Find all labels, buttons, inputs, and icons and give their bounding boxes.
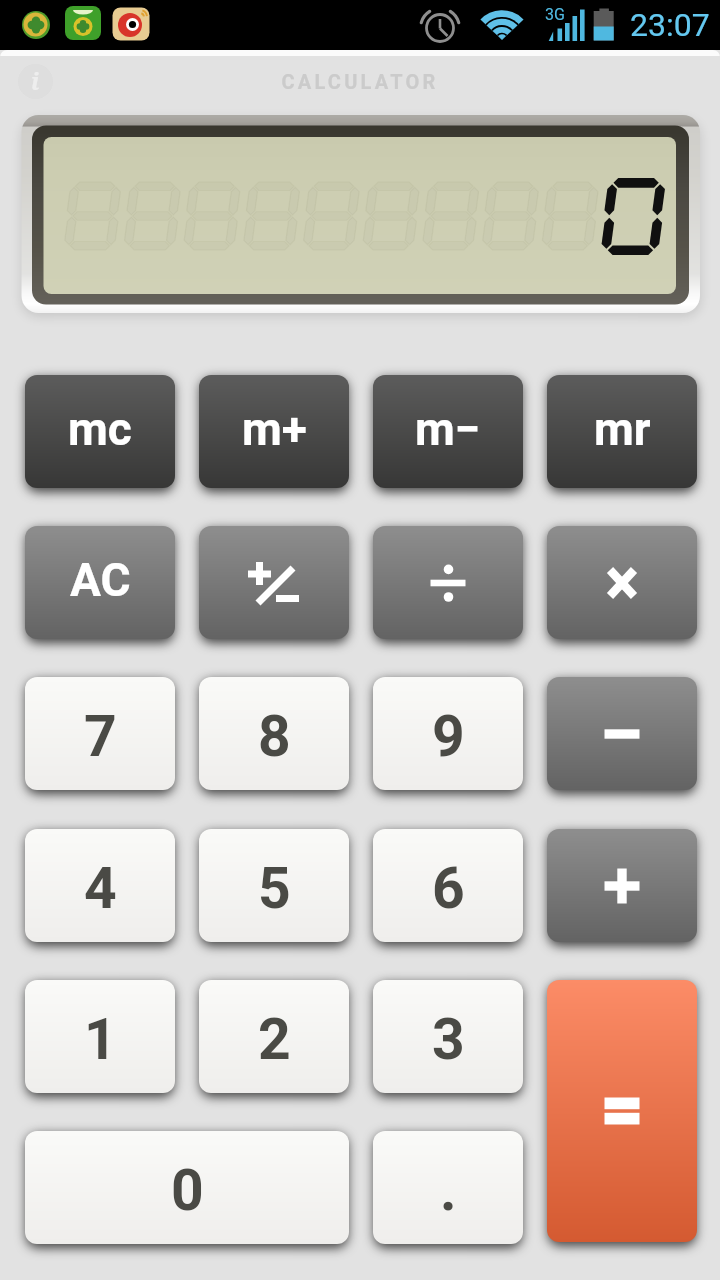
- staticText: 9: [432, 703, 465, 770]
- button[interactable]: mc: [25, 375, 175, 488]
- button[interactable]: [547, 526, 697, 639]
- button[interactable]: [373, 526, 523, 639]
- staticText: 0: [171, 1157, 204, 1224]
- staticText: mr: [594, 402, 651, 456]
- button[interactable]: 8: [199, 677, 349, 790]
- staticText: 8: [258, 703, 291, 770]
- staticText: 1: [84, 1006, 117, 1073]
- staticText: mc: [68, 402, 132, 456]
- button[interactable]: 9: [373, 677, 523, 790]
- staticText: 7: [84, 703, 117, 770]
- button[interactable]: Info: [18, 64, 53, 99]
- button[interactable]: 2: [199, 980, 349, 1093]
- staticText: 23:07: [630, 6, 710, 44]
- staticText: 4: [84, 855, 117, 922]
- button[interactable]: 1: [25, 980, 175, 1093]
- button[interactable]: 4: [25, 829, 175, 942]
- staticText: 6: [432, 855, 465, 922]
- staticText: CALCULATOR: [0, 70, 720, 1280]
- button[interactable]: .: [373, 1131, 523, 1244]
- staticText: 3: [432, 1006, 465, 1073]
- button[interactable]: m+: [199, 375, 349, 488]
- staticText: 3G: [545, 5, 565, 24]
- staticText: AC: [70, 553, 131, 607]
- button[interactable]: 5: [199, 829, 349, 942]
- button[interactable]: 6: [373, 829, 523, 942]
- staticText: 2: [258, 1006, 291, 1073]
- staticText: i: [31, 65, 40, 96]
- staticText: m−: [415, 402, 481, 456]
- button[interactable]: [547, 829, 697, 942]
- button[interactable]: m−: [373, 375, 523, 488]
- button[interactable]: [199, 526, 349, 639]
- button[interactable]: AC: [25, 526, 175, 639]
- button[interactable]: [547, 677, 697, 790]
- staticText: m+: [242, 402, 307, 456]
- button[interactable]: 7: [25, 677, 175, 790]
- button[interactable]: 0: [25, 1131, 349, 1244]
- button[interactable]: [547, 980, 697, 1242]
- staticText: 5: [258, 855, 291, 922]
- button[interactable]: mr: [547, 375, 697, 488]
- staticText: .: [440, 1157, 457, 1224]
- button[interactable]: 3: [373, 980, 523, 1093]
